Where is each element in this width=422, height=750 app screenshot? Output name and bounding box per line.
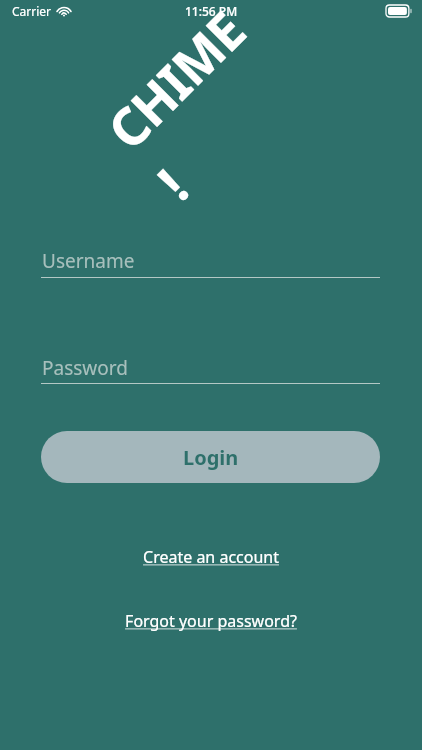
staticText: CHIME! (91, 0, 319, 214)
button[interactable]: Create an account (137, 543, 285, 571)
button[interactable]: Username (41, 248, 380, 285)
staticText: Forgot your password? (125, 610, 297, 632)
staticText: Username (42, 248, 135, 274)
button[interactable]: Password (41, 355, 380, 391)
staticText: 11:56 PM (185, 3, 238, 19)
staticText: Create an account (143, 546, 279, 568)
button[interactable]: Forgot your password? (119, 607, 303, 635)
staticText: Login (183, 444, 239, 471)
button[interactable]: Login (41, 431, 380, 483)
staticText: Carrier (12, 3, 52, 19)
staticText: Password (42, 355, 128, 381)
